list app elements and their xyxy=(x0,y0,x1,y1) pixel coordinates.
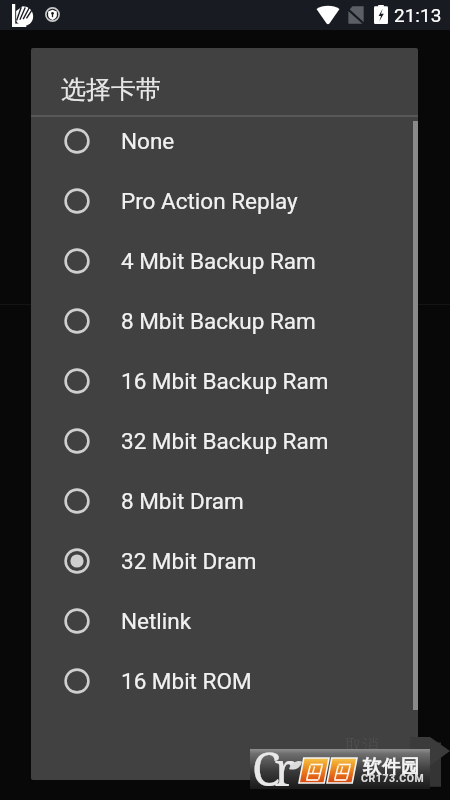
button[interactable]: 8 Mbit Backup Ram xyxy=(31,291,418,351)
button[interactable]: 16 Mbit Backup Ram xyxy=(31,351,418,411)
button[interactable]: 32 Mbit Backup Ram xyxy=(31,411,418,471)
other: No SIM card xyxy=(347,6,364,24)
staticText: 4 Mbit Backup Ram xyxy=(121,248,316,274)
staticText: CR173.COM xyxy=(361,772,425,784)
staticText: C xyxy=(252,737,281,800)
button[interactable]: None xyxy=(31,111,418,171)
staticText: Netlink xyxy=(121,608,192,634)
staticText: Pro Action Replay xyxy=(121,188,298,214)
other: VPN xyxy=(45,7,60,22)
button[interactable]: 4 Mbit Backup Ram xyxy=(31,231,418,291)
staticText: 8 Mbit Backup Ram xyxy=(121,308,316,334)
staticText: 16 Mbit ROM xyxy=(121,668,252,694)
button[interactable]: 取消 xyxy=(334,724,390,767)
other: Gesture xyxy=(12,4,35,27)
button[interactable]: Pro Action Replay xyxy=(31,171,418,231)
staticText: 32 Mbit Backup Ram xyxy=(121,428,329,454)
other: Battery charging xyxy=(374,5,388,24)
staticText: 21:13 xyxy=(394,4,442,26)
staticText: 软件园 xyxy=(363,755,420,778)
staticText: 选择卡带 xyxy=(61,74,161,105)
button[interactable]: 32 Mbit Dram xyxy=(31,531,418,591)
staticText: 16 Mbit Backup Ram xyxy=(121,368,329,394)
staticText: None xyxy=(121,128,175,154)
button[interactable]: 16 Mbit ROM xyxy=(31,651,418,711)
other: Wi-Fi xyxy=(316,6,340,24)
staticText: r xyxy=(274,737,296,800)
staticText: 取消 xyxy=(345,735,379,756)
staticText: 8 Mbit Dram xyxy=(121,488,244,514)
button[interactable]: 8 Mbit Dram xyxy=(31,471,418,531)
button[interactable]: Netlink xyxy=(31,591,418,651)
staticText: 32 Mbit Dram xyxy=(121,548,257,574)
